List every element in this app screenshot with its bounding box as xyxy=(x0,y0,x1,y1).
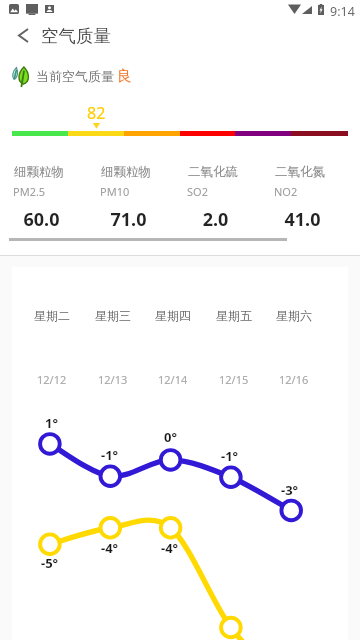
staticText: 60.0 xyxy=(14,207,69,232)
staticText: -4° xyxy=(101,539,119,557)
staticText: 二氧化氮 xyxy=(275,164,325,180)
staticText: -1° xyxy=(221,447,239,465)
button[interactable]: 星期二 xyxy=(22,306,82,324)
staticText: PM10 xyxy=(100,184,130,199)
staticText: 12/12 xyxy=(37,372,67,387)
staticText: 良 xyxy=(117,67,132,86)
staticText: 细颗粒物 xyxy=(14,164,64,180)
staticText: 12/13 xyxy=(98,372,128,387)
staticText: NO2 xyxy=(274,184,298,199)
button[interactable]: 星期四 xyxy=(143,306,203,324)
staticText: 星期二 xyxy=(34,308,70,323)
staticText: 当前空气质量 xyxy=(36,68,114,84)
staticText: 二氧化硫 xyxy=(188,164,238,180)
staticText: -3° xyxy=(281,481,299,499)
staticText: -1° xyxy=(101,446,119,464)
staticText: 1° xyxy=(45,414,58,432)
staticText: 2.0 xyxy=(188,207,243,232)
staticText: 12/14 xyxy=(158,372,188,387)
staticText: -4° xyxy=(161,539,179,557)
button[interactable]: 星期五 xyxy=(204,306,264,324)
staticText: 0° xyxy=(164,428,177,446)
staticText: 星期六 xyxy=(276,308,312,323)
staticText: 细颗粒物 xyxy=(101,164,151,180)
staticText: PM2.5 xyxy=(13,184,46,199)
staticText: 41.0 xyxy=(275,207,330,232)
staticText: 空气质量 xyxy=(41,25,111,47)
staticText: 星期四 xyxy=(155,308,191,323)
staticText: 星期三 xyxy=(95,308,131,323)
staticText: 星期五 xyxy=(216,308,252,323)
staticText: SO2 xyxy=(187,184,208,199)
button[interactable]: Back xyxy=(5,19,41,51)
staticText: 12/16 xyxy=(279,372,309,387)
staticText: -5° xyxy=(41,554,59,572)
staticText: 71.0 xyxy=(101,207,156,232)
staticText: 12/15 xyxy=(219,372,249,387)
button[interactable]: 星期六 xyxy=(264,306,324,324)
staticText: 82 xyxy=(87,102,106,124)
staticText: 9:14 xyxy=(330,3,355,20)
button[interactable]: 星期三 xyxy=(83,306,143,324)
